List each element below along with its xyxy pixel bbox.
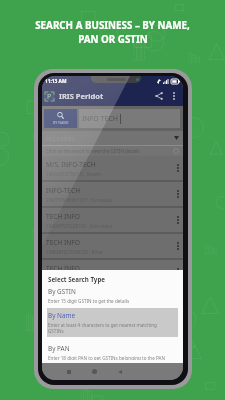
button[interactable]: By Name bbox=[47, 308, 178, 337]
staticText: Click on the result to view the GSTIN de… bbox=[46, 148, 140, 154]
button[interactable]: By PAN bbox=[47, 341, 178, 363]
staticText: TECH INFO bbox=[46, 264, 80, 273]
button[interactable]: By GSTIN bbox=[47, 284, 178, 307]
staticText: Select Search Type bbox=[48, 275, 105, 283]
staticText: P bbox=[47, 92, 52, 102]
button[interactable]: TECH INFO bbox=[42, 208, 183, 232]
staticText: SEARCH A BUSINESS – BY NAME, bbox=[35, 19, 190, 32]
button[interactable]: TECH INFO bbox=[42, 260, 183, 284]
staticText: BY NAME bbox=[53, 120, 69, 125]
button[interactable]: TECH INFO bbox=[42, 234, 183, 258]
staticText: By PAN bbox=[48, 344, 70, 353]
button[interactable]: ALL STATES bbox=[46, 131, 179, 145]
staticText: Enter 18 digit PAN to get GSTINs belongi… bbox=[48, 355, 165, 360]
button[interactable]: M/S. INFO-TECH bbox=[42, 156, 183, 180]
button[interactable]: More options bbox=[167, 89, 181, 103]
button[interactable]: BY NAME bbox=[44, 109, 77, 128]
staticText: M/S. INFO-TECH bbox=[46, 160, 96, 169]
staticText: By GSTIN bbox=[48, 287, 76, 296]
staticText: Enter at least 4 characters to get neare… bbox=[48, 322, 165, 334]
staticText: IRIS Peridot bbox=[59, 91, 104, 101]
staticText: INFO-TECH bbox=[46, 186, 81, 195]
staticText: Enter 15 digit GSTIN to get the details bbox=[48, 298, 130, 304]
staticText: 18AADTI377M1ZJ , Assam bbox=[46, 171, 101, 177]
staticText: TECH INFO bbox=[46, 212, 80, 221]
staticText: 29ABTPS4606H1Z3 , Karnataka bbox=[46, 197, 113, 203]
staticText: By Name bbox=[48, 311, 76, 320]
staticText: TECH INFO bbox=[46, 238, 80, 247]
staticText: ALL STATES bbox=[46, 135, 75, 142]
staticText: 11:13 AM bbox=[45, 78, 67, 85]
staticText: PAN OR GSTIN bbox=[78, 33, 148, 46]
button[interactable]: Share bbox=[151, 88, 167, 104]
button[interactable]: INFO-TECH bbox=[42, 182, 183, 206]
staticText: INFO TECH bbox=[82, 114, 119, 124]
staticText: 29A0KPS5522B1ZV , Karnataka bbox=[46, 223, 113, 229]
staticText: 10BMBHJ2509N1Z0 , Bihar bbox=[46, 249, 104, 255]
staticText: 29AAJFT1234B1ZQ , Karnataka bbox=[46, 275, 112, 281]
